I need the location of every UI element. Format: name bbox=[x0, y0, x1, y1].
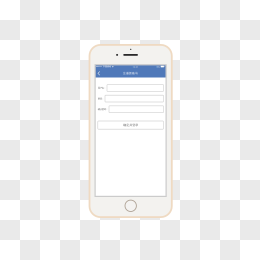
staticText: 确定并登录 bbox=[123, 123, 138, 127]
staticText: 注册新账号 bbox=[123, 71, 138, 75]
staticText: 中国移动 bbox=[103, 65, 111, 68]
staticText: 确认密码： bbox=[98, 108, 108, 111]
staticText: 13:24 bbox=[132, 65, 137, 68]
staticText: 用户名： bbox=[98, 86, 106, 89]
button[interactable]: Back bbox=[95, 69, 103, 78]
staticText: 密码： bbox=[98, 97, 104, 100]
button[interactable]: 确定并登录 bbox=[98, 121, 163, 129]
staticText: 78% bbox=[156, 65, 160, 68]
